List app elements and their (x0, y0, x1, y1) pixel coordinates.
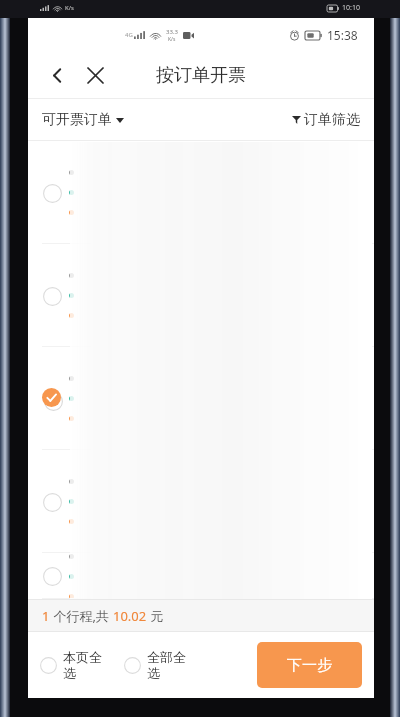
staticText: 选 (147, 665, 160, 681)
button[interactable]: Close (78, 58, 112, 92)
button[interactable]: 下一步 (257, 642, 362, 688)
staticText: 33.3 (166, 28, 178, 36)
button[interactable] (28, 553, 374, 599)
staticText: K/s (65, 4, 74, 12)
staticText: 本页全 (63, 649, 102, 665)
staticText: 元 (147, 607, 164, 625)
button[interactable]: 本页全 (38, 643, 104, 687)
staticText: 全部全 (147, 649, 186, 665)
staticText: 可开票订单 (42, 111, 112, 129)
staticText: 订单筛选 (304, 111, 360, 129)
staticText: 1 (42, 607, 50, 625)
staticText: 10.02 (113, 607, 147, 625)
staticText: K/s (168, 36, 176, 43)
button[interactable] (28, 141, 374, 244)
staticText: 15:38 (327, 27, 358, 43)
staticText: 按订单开票 (156, 64, 246, 87)
button[interactable]: 可开票订单 (40, 107, 126, 133)
staticText: 个行程,共 (50, 607, 113, 625)
button[interactable] (28, 347, 374, 450)
staticText: 选 (63, 665, 76, 681)
button[interactable] (28, 450, 374, 553)
staticText: 10:10 (342, 3, 360, 13)
staticText: 4G (125, 31, 133, 39)
staticText: 下一步 (287, 656, 332, 675)
button[interactable]: 订单筛选 (290, 107, 362, 133)
button[interactable]: 全部全 (122, 643, 188, 687)
button[interactable]: Back (40, 58, 74, 92)
button[interactable] (28, 244, 374, 347)
